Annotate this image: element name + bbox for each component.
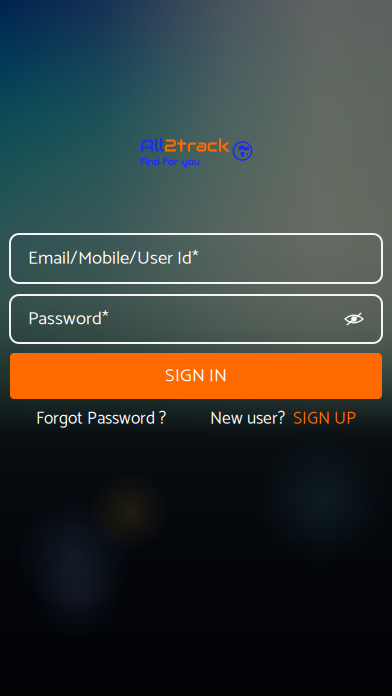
staticText: SIGN IN: [165, 361, 227, 391]
staticText: Email/Mobile/User Id*: [28, 243, 199, 274]
staticText: New user?: [210, 405, 285, 433]
button[interactable]: Show password: [344, 311, 364, 327]
staticText: All: [139, 134, 163, 156]
staticText: 2track: [163, 134, 229, 156]
staticText: SIGN UP: [293, 405, 356, 433]
button[interactable]: SIGN UP: [293, 405, 356, 433]
staticText: Forgot Password ?: [36, 405, 166, 433]
staticText: Find for you: [139, 156, 199, 167]
button[interactable]: Forgot Password ?: [36, 405, 166, 433]
button[interactable]: SIGN IN: [10, 353, 382, 399]
staticText: Password*: [28, 304, 109, 334]
